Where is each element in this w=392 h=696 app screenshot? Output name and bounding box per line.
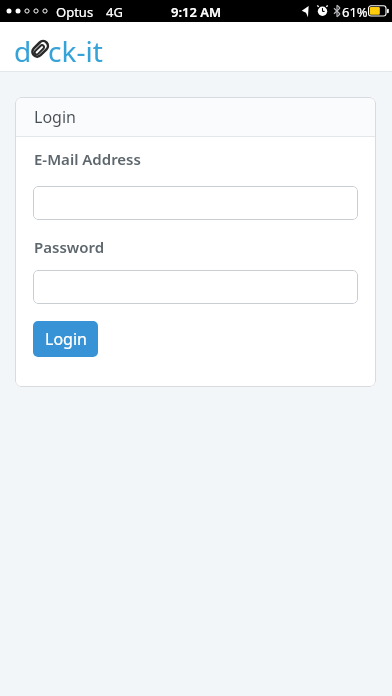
button[interactable] <box>33 186 358 220</box>
button[interactable]: Login <box>33 321 98 357</box>
staticText: 61% <box>342 3 368 21</box>
staticText: E-Mail Address <box>34 149 141 169</box>
staticText: Login <box>34 106 76 128</box>
staticText: 9:12 AM <box>171 3 222 21</box>
button[interactable] <box>33 270 358 304</box>
staticText: Optus <box>56 3 94 21</box>
staticText: Login <box>45 328 87 350</box>
staticText: d <box>14 32 32 70</box>
staticText: Password <box>34 237 105 257</box>
staticText: 4G <box>106 3 123 21</box>
staticText: ck-it <box>48 32 103 70</box>
